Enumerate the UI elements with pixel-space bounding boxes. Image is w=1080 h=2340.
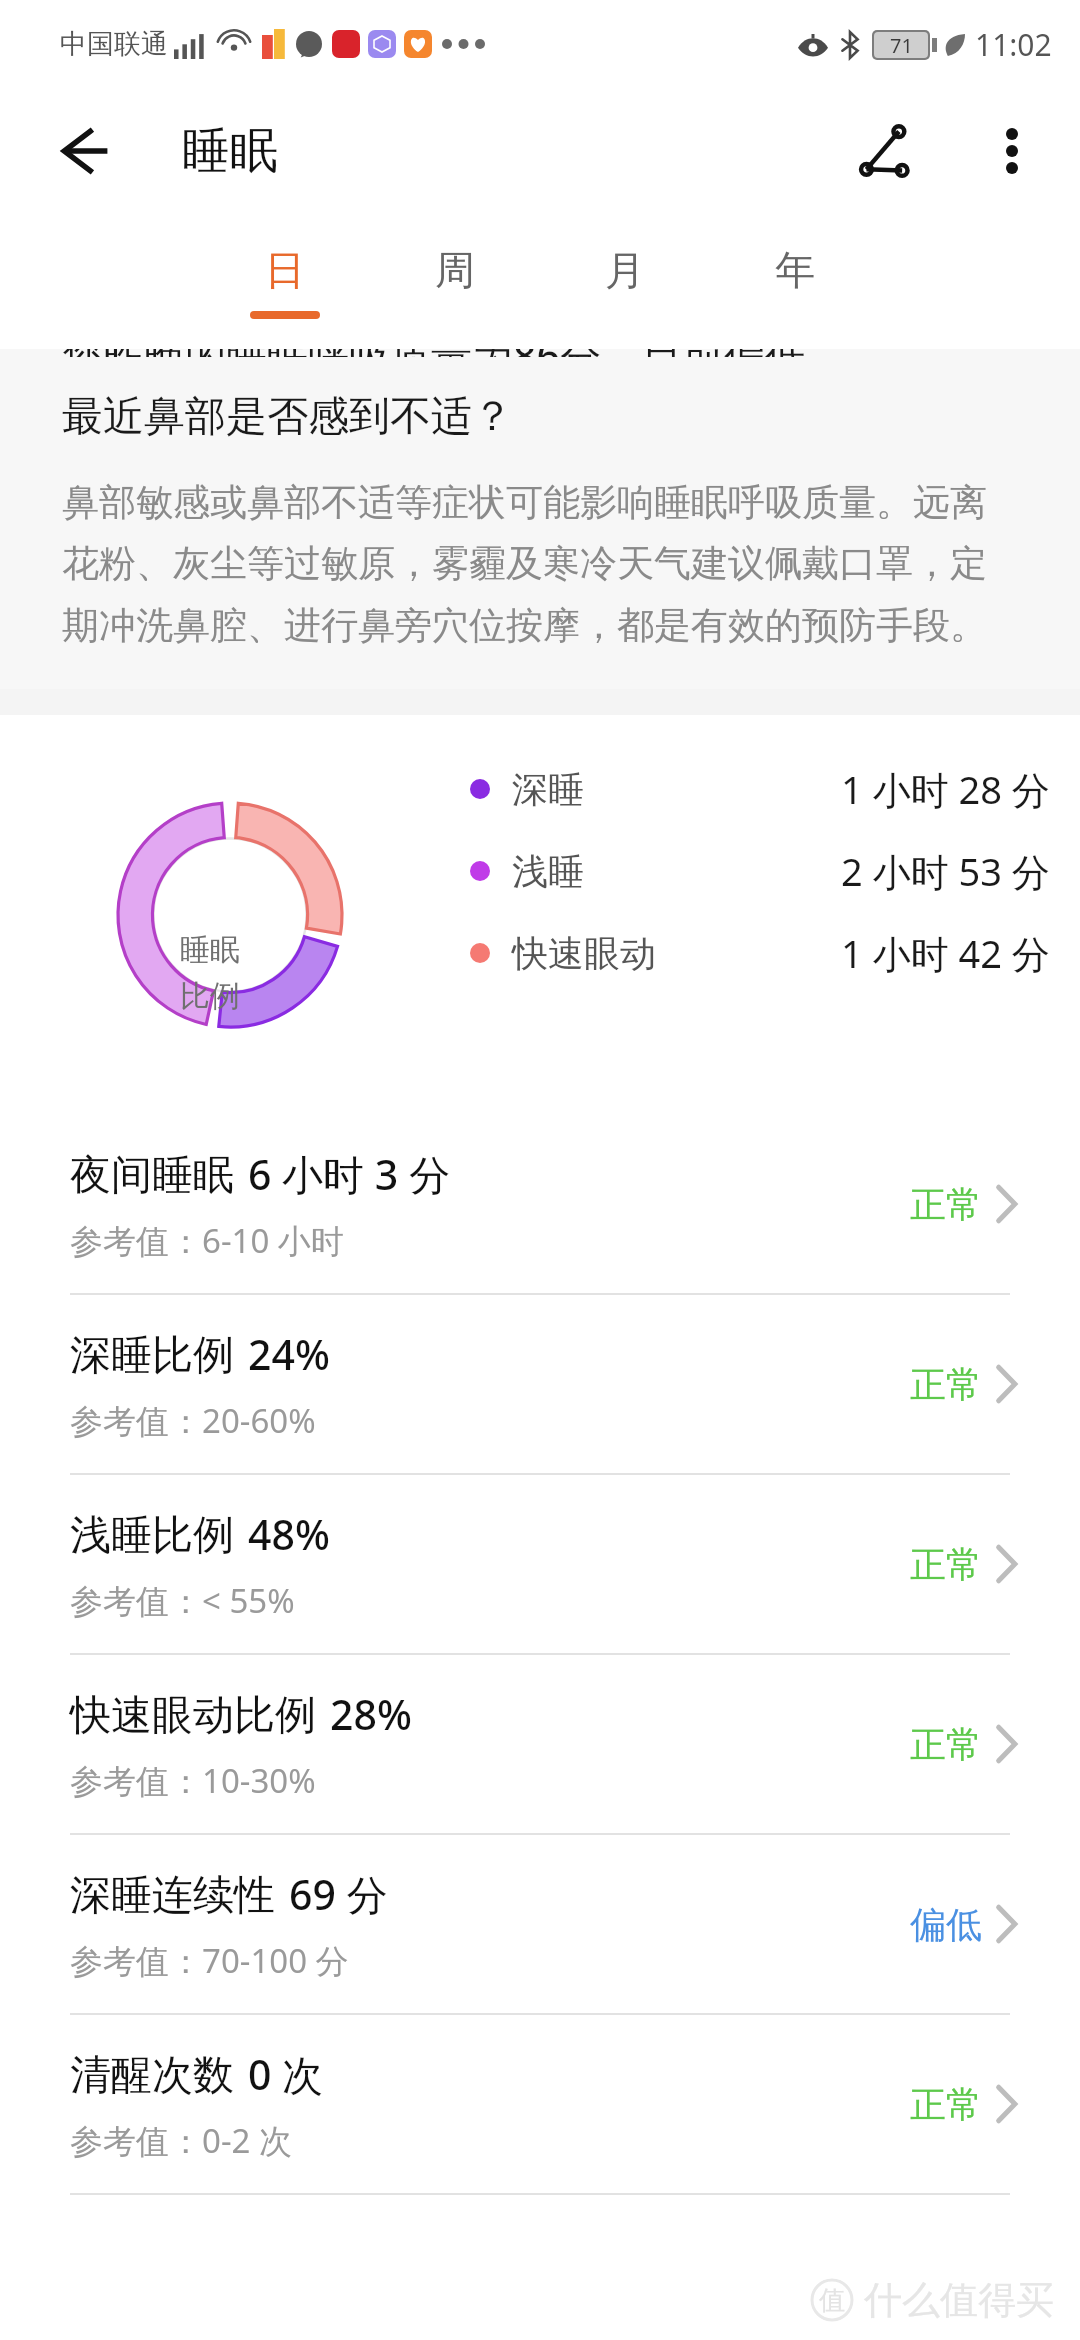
staticText: 值 [819, 2284, 845, 2317]
button[interactable]: 年 [710, 214, 880, 349]
staticText: 参考值：6-10 小时 [70, 1218, 344, 1263]
staticText: 中国联通 [60, 27, 168, 61]
staticText: 鼻部敏感或鼻部不适等症状可能影响睡眠呼吸质量。远离花粉、灰尘等过敏原，雾霾及寒冷… [62, 479, 1018, 649]
staticText: 什么值得买 [864, 2276, 1054, 2324]
staticText: 年 [775, 245, 815, 295]
staticText: 睡眠 [182, 121, 278, 181]
staticText: 参考值：10-30% [70, 1758, 316, 1803]
staticText: 11:02 [975, 24, 1052, 65]
staticText: 正常 [910, 1722, 982, 1767]
staticText: 快速眼动 [512, 931, 656, 976]
staticText: 正常 [910, 2082, 982, 2127]
staticText: 夜间睡眠 [70, 1150, 234, 1202]
staticText: 6 小时 3 分 [248, 1146, 450, 1202]
staticText: 您昨晚的睡眠呼吸质量为86分，目前偏低。 [62, 349, 847, 357]
staticText: 69 分 [289, 1866, 388, 1922]
staticText: 1 小时 28 分 [841, 763, 1050, 815]
staticText: 参考值：20-60% [70, 1398, 316, 1443]
staticText: 48% [248, 1506, 330, 1562]
button[interactable]: 深睡连续性 [0, 1835, 1080, 2013]
button[interactable]: 周 [370, 214, 540, 349]
button[interactable]: Share [844, 108, 930, 194]
staticText: 正常 [910, 1542, 982, 1587]
button[interactable]: Back [42, 109, 126, 193]
button[interactable]: More options [972, 111, 1052, 191]
staticText: 正常 [910, 1182, 982, 1227]
button[interactable]: 清醒次数 [0, 2015, 1080, 2193]
button[interactable]: 快速眼动比例 [0, 1655, 1080, 1833]
staticText: 深睡连续性 [70, 1870, 275, 1922]
staticText: 日 [265, 245, 305, 295]
staticText: 28% [330, 1686, 412, 1742]
staticText: 0 次 [248, 2046, 324, 2102]
button[interactable]: 日 [200, 214, 370, 349]
staticText: 参考值：70-100 分 [70, 1938, 349, 1983]
staticText: 深睡比例 [70, 1330, 234, 1382]
staticText: 参考值：< 55% [70, 1578, 295, 1623]
staticText: 快速眼动比例 [70, 1690, 316, 1742]
staticText: 浅睡 [512, 849, 584, 894]
button[interactable]: 夜间睡眠 [0, 1115, 1080, 1293]
staticText: 深睡 [512, 767, 584, 812]
staticText: 偏低 [910, 1902, 982, 1947]
button[interactable]: 深睡比例 [0, 1295, 1080, 1473]
staticText: 比例 [180, 977, 240, 1015]
staticText: 浅睡比例 [70, 1510, 234, 1562]
button[interactable]: 浅睡比例 [0, 1475, 1080, 1653]
staticText: 最近鼻部是否感到不适？ [62, 391, 513, 443]
staticText: 71 [890, 32, 913, 58]
staticText: 1 小时 42 分 [841, 927, 1050, 979]
staticText: 清醒次数 [70, 2050, 234, 2102]
staticText: 周 [435, 245, 475, 295]
staticText: 睡眠 [180, 931, 240, 969]
staticText: 月 [605, 245, 645, 295]
staticText: 2 小时 53 分 [841, 845, 1050, 897]
button[interactable]: 月 [540, 214, 710, 349]
staticText: 24% [248, 1326, 330, 1382]
staticText: 参考值：0-2 次 [70, 2118, 292, 2163]
staticText: 正常 [910, 1362, 982, 1407]
